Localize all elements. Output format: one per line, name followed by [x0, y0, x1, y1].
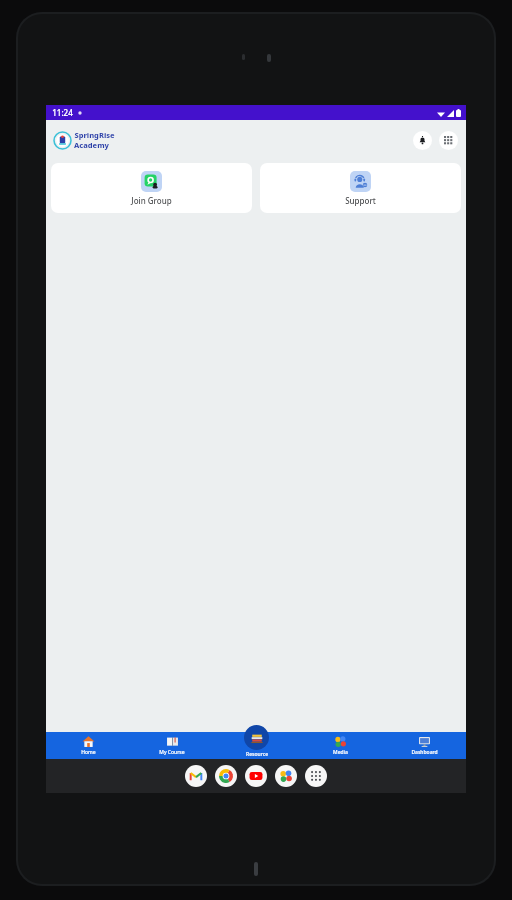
staticText: Media: [333, 749, 348, 756]
button[interactable]: All apps: [305, 765, 327, 787]
staticText: Join Group: [131, 195, 172, 206]
staticText: 11:24: [52, 107, 73, 118]
staticText: Home: [81, 749, 96, 756]
staticText: My Course: [159, 749, 185, 756]
button[interactable]: Resource: [244, 725, 269, 759]
staticText: Support: [345, 195, 376, 206]
staticText: Resource: [246, 751, 268, 758]
button[interactable]: Menu: [439, 131, 458, 150]
button[interactable]: YouTube: [245, 765, 267, 787]
button[interactable]: Gmail: [185, 765, 207, 787]
button[interactable]: Dashboard: [382, 732, 466, 759]
staticText: SpringRise: [74, 130, 115, 140]
button[interactable]: Join Group: [51, 163, 252, 213]
button[interactable]: My Course: [130, 732, 214, 759]
button[interactable]: Chrome: [215, 765, 237, 787]
button[interactable]: SpringRise: [54, 130, 115, 150]
button[interactable]: Support: [260, 163, 461, 213]
button[interactable]: Notifications: [413, 131, 432, 150]
button[interactable]: Media: [298, 732, 382, 759]
staticText: Academy: [74, 140, 109, 150]
button[interactable]: Photos: [275, 765, 297, 787]
button[interactable]: Home: [46, 732, 130, 759]
staticText: Dashboard: [411, 749, 438, 756]
